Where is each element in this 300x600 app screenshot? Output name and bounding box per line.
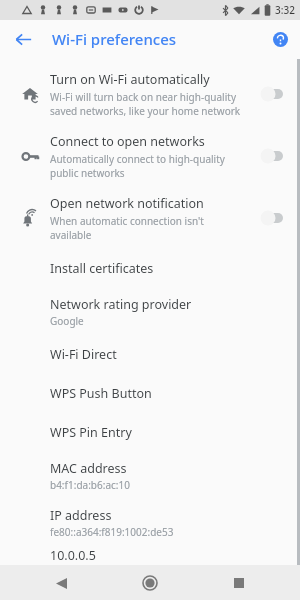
staticText: saved networks, like your home network — [50, 104, 241, 118]
button[interactable]: Home — [136, 569, 164, 597]
button[interactable]: Wi-Fi Direct — [0, 335, 300, 374]
staticText: Automatically connect to high-quality — [50, 152, 225, 166]
button[interactable]: WPS Pin Entry — [0, 413, 300, 452]
staticText: b4:f1:da:b6:ac:10 — [50, 478, 130, 492]
staticText: Network rating provider — [50, 296, 192, 313]
staticText: WPS Pin Entry — [50, 424, 132, 441]
staticText: When automatic connection isn't — [50, 214, 204, 228]
button[interactable]: Connect to open networks — [0, 125, 300, 187]
staticText: Install certificates — [50, 260, 154, 277]
button[interactable]: Recent apps — [226, 570, 252, 596]
staticText: Wi-Fi will turn back on near high-qualit… — [50, 90, 236, 104]
button[interactable]: Open network notification — [0, 187, 300, 249]
staticText: IP address — [50, 507, 112, 524]
button[interactable]: Help — [265, 24, 295, 54]
staticText: public networks — [50, 166, 125, 180]
button[interactable]: MAC address — [0, 452, 300, 499]
button[interactable]: Network rating provider — [0, 288, 300, 335]
button[interactable]: 10.0.0.5 — [0, 546, 300, 565]
staticText: Wi-Fi preferences — [52, 29, 177, 49]
staticText: 3:32 — [275, 3, 295, 17]
button[interactable]: Turn on Wi-Fi automatically — [0, 63, 300, 125]
staticText: Google — [50, 314, 84, 328]
button[interactable]: Toggle Connect to open networks — [256, 143, 290, 169]
button[interactable]: Back — [48, 570, 74, 596]
staticText: Open network notification — [50, 195, 204, 212]
staticText: available — [50, 228, 92, 242]
staticText: Connect to open networks — [50, 133, 205, 150]
button[interactable]: Toggle Turn on Wi-Fi automatically — [256, 81, 290, 107]
button[interactable]: Back — [6, 22, 40, 56]
button[interactable]: IP address — [0, 499, 300, 546]
staticText: MAC address — [50, 460, 127, 477]
staticText: Wi-Fi Direct — [50, 346, 117, 363]
button[interactable]: WPS Push Button — [0, 374, 300, 413]
staticText: fe80::a364:f819:1002:de53 — [50, 525, 174, 539]
staticText: 10.0.0.5 — [50, 547, 96, 564]
staticText: Turn on Wi-Fi automatically — [50, 71, 210, 88]
staticText: WPS Push Button — [50, 385, 152, 402]
button[interactable]: Install certificates — [0, 249, 300, 288]
button[interactable]: Toggle Open network notification — [256, 205, 290, 231]
